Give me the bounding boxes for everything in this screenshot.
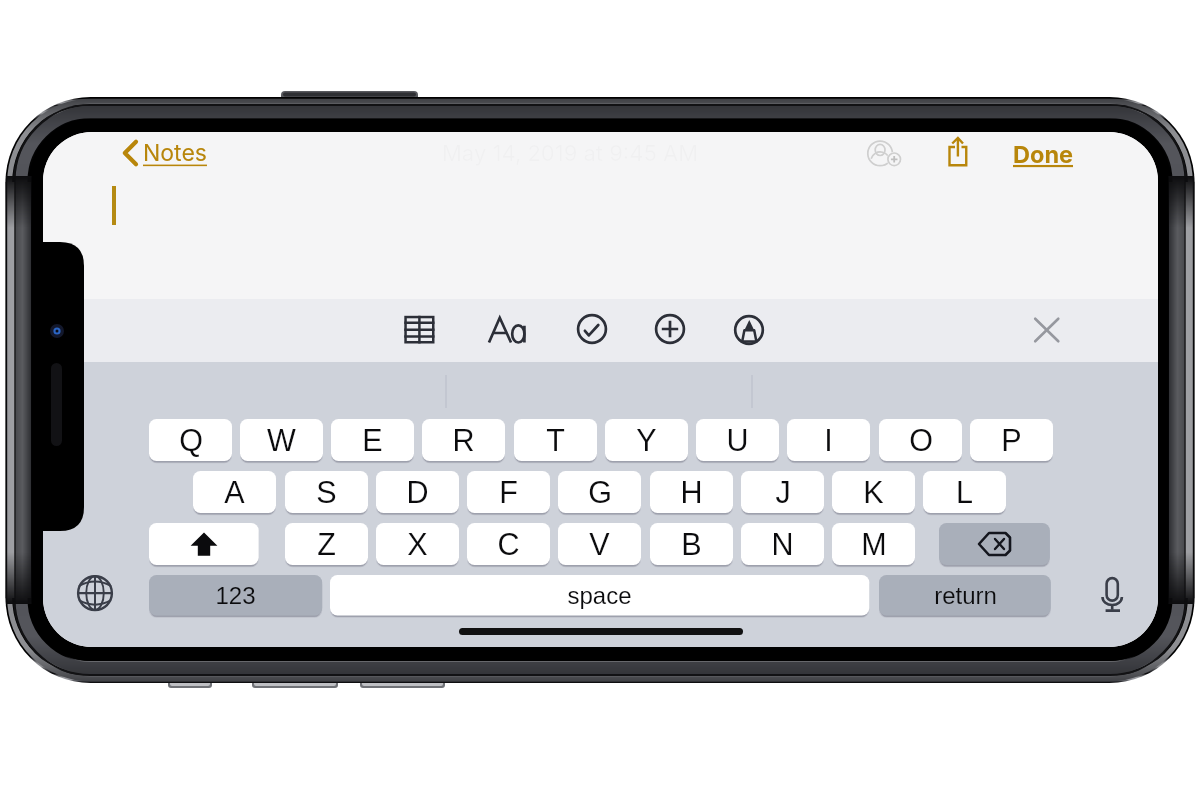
staticText: W [267,423,296,457]
staticText: B [681,527,702,561]
button[interactable]: M [832,523,915,568]
button[interactable]: V [558,523,641,568]
button[interactable]: F [467,471,550,516]
button[interactable]: B [650,523,733,568]
staticText: T [546,423,565,457]
button[interactable]: Notes [119,136,210,170]
button[interactable]: Checklist [568,305,616,353]
staticText: Done [1013,140,1074,168]
button[interactable]: Close keyboard [1023,306,1071,354]
staticText: X [407,527,428,561]
button[interactable]: K [832,471,915,516]
staticText: Y [636,423,657,457]
button[interactable]: Dictate [1094,574,1132,612]
staticText: P [1001,423,1022,457]
staticText: M [861,527,887,561]
button[interactable]: N [741,523,824,568]
staticText: Z [317,527,336,561]
button[interactable]: Add people [864,138,904,172]
button[interactable]: J [741,471,824,516]
button[interactable]: X [376,523,459,568]
button[interactable]: C [467,523,550,568]
staticText: L [956,475,973,509]
button[interactable]: Shift [149,523,259,568]
button[interactable]: return [879,575,1051,619]
staticText: Notes [143,139,207,167]
staticText: Q [179,423,203,457]
button[interactable]: D [376,471,459,516]
staticText: F [499,475,518,509]
staticText: C [497,527,520,561]
button[interactable]: W [240,419,323,464]
staticText: G [588,475,612,509]
button[interactable]: Text formatting [484,312,534,350]
button[interactable]: G [558,471,641,516]
staticText: J [775,475,791,509]
staticText: K [863,475,884,509]
staticText: R [452,423,475,457]
button[interactable]: Switch keyboard [75,573,115,613]
button[interactable]: H [650,471,733,516]
button[interactable]: Z [285,523,368,568]
button[interactable]: Delete [939,523,1050,568]
staticText: V [589,527,610,561]
staticText: D [406,475,429,509]
button[interactable]: space [330,575,869,619]
button[interactable]: S [285,471,368,516]
button[interactable]: U [696,419,779,464]
button[interactable]: L [923,471,1006,516]
button[interactable]: A [193,471,276,516]
button[interactable]: P [970,419,1053,464]
button[interactable]: 123 [149,575,322,619]
button[interactable]: Markup [725,306,773,354]
button[interactable]: Done [1008,137,1079,171]
staticText: U [726,423,749,457]
button[interactable]: Table [394,306,446,354]
button[interactable]: Share [940,132,976,172]
button[interactable]: Attach [646,305,694,353]
button[interactable]: T [514,419,597,464]
staticText: N [771,527,794,561]
button[interactable]: I [787,419,870,464]
staticText: space [567,582,632,609]
staticText: O [909,423,933,457]
button[interactable]: R [422,419,505,464]
staticText: return [934,582,997,609]
staticText: E [362,423,383,457]
staticText: A [224,475,245,509]
button[interactable]: Y [605,419,688,464]
staticText: 123 [215,582,256,609]
staticText: H [680,475,703,509]
staticText: S [316,475,337,509]
staticText: I [824,423,833,457]
button[interactable]: O [879,419,962,464]
button[interactable]: Q [149,419,232,464]
button[interactable]: E [331,419,414,464]
